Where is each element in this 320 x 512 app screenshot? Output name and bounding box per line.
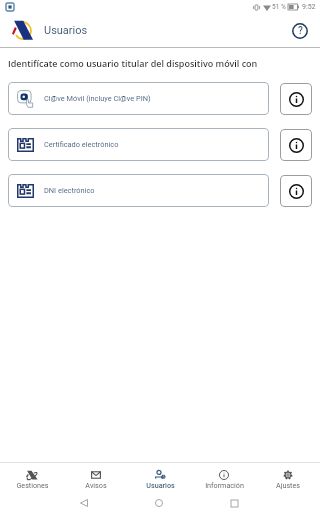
staticText: Certificado electrónico — [44, 140, 119, 149]
staticText: Usuarios — [44, 24, 88, 37]
button[interactable]: Información sobre Certificado electrónic… — [280, 129, 312, 161]
button[interactable]: Información — [192, 463, 256, 494]
staticText: DNI electrónico — [44, 186, 95, 195]
button[interactable]: Inicio — [149, 494, 169, 512]
staticText: Información — [205, 481, 244, 489]
button[interactable]: Cl@ve Móvil (incluye Cl@ve PIN) — [8, 82, 269, 115]
staticText: ? — [298, 25, 303, 37]
button[interactable]: Gestiones — [0, 463, 64, 494]
button[interactable]: Información sobre DNI electrónico — [280, 175, 312, 207]
button[interactable]: Avisos — [64, 463, 128, 494]
staticText: Avisos — [85, 481, 107, 489]
button[interactable]: Certificado electrónico — [8, 128, 269, 161]
staticText: Gestiones — [16, 481, 49, 489]
button[interactable]: Atrás — [74, 494, 94, 512]
staticText: Identifícate como usuario titular del di… — [8, 57, 258, 69]
staticText: Usuarios — [146, 481, 175, 489]
button[interactable]: Información sobre Cl@ve Móvil (incluye C… — [280, 83, 312, 115]
button[interactable]: Ajustes — [256, 463, 320, 494]
staticText: Cl@ve Móvil (incluye Cl@ve PIN) — [44, 94, 151, 103]
staticText: 51 % — [272, 3, 286, 11]
button[interactable]: Usuarios — [128, 463, 192, 494]
staticText: 9:52 — [302, 3, 316, 11]
button[interactable]: DNI electrónico — [8, 174, 269, 207]
button[interactable]: Ayuda — [283, 14, 317, 47]
staticText: Ajustes — [276, 481, 300, 489]
button[interactable]: Aplicaciones recientes — [224, 494, 244, 512]
